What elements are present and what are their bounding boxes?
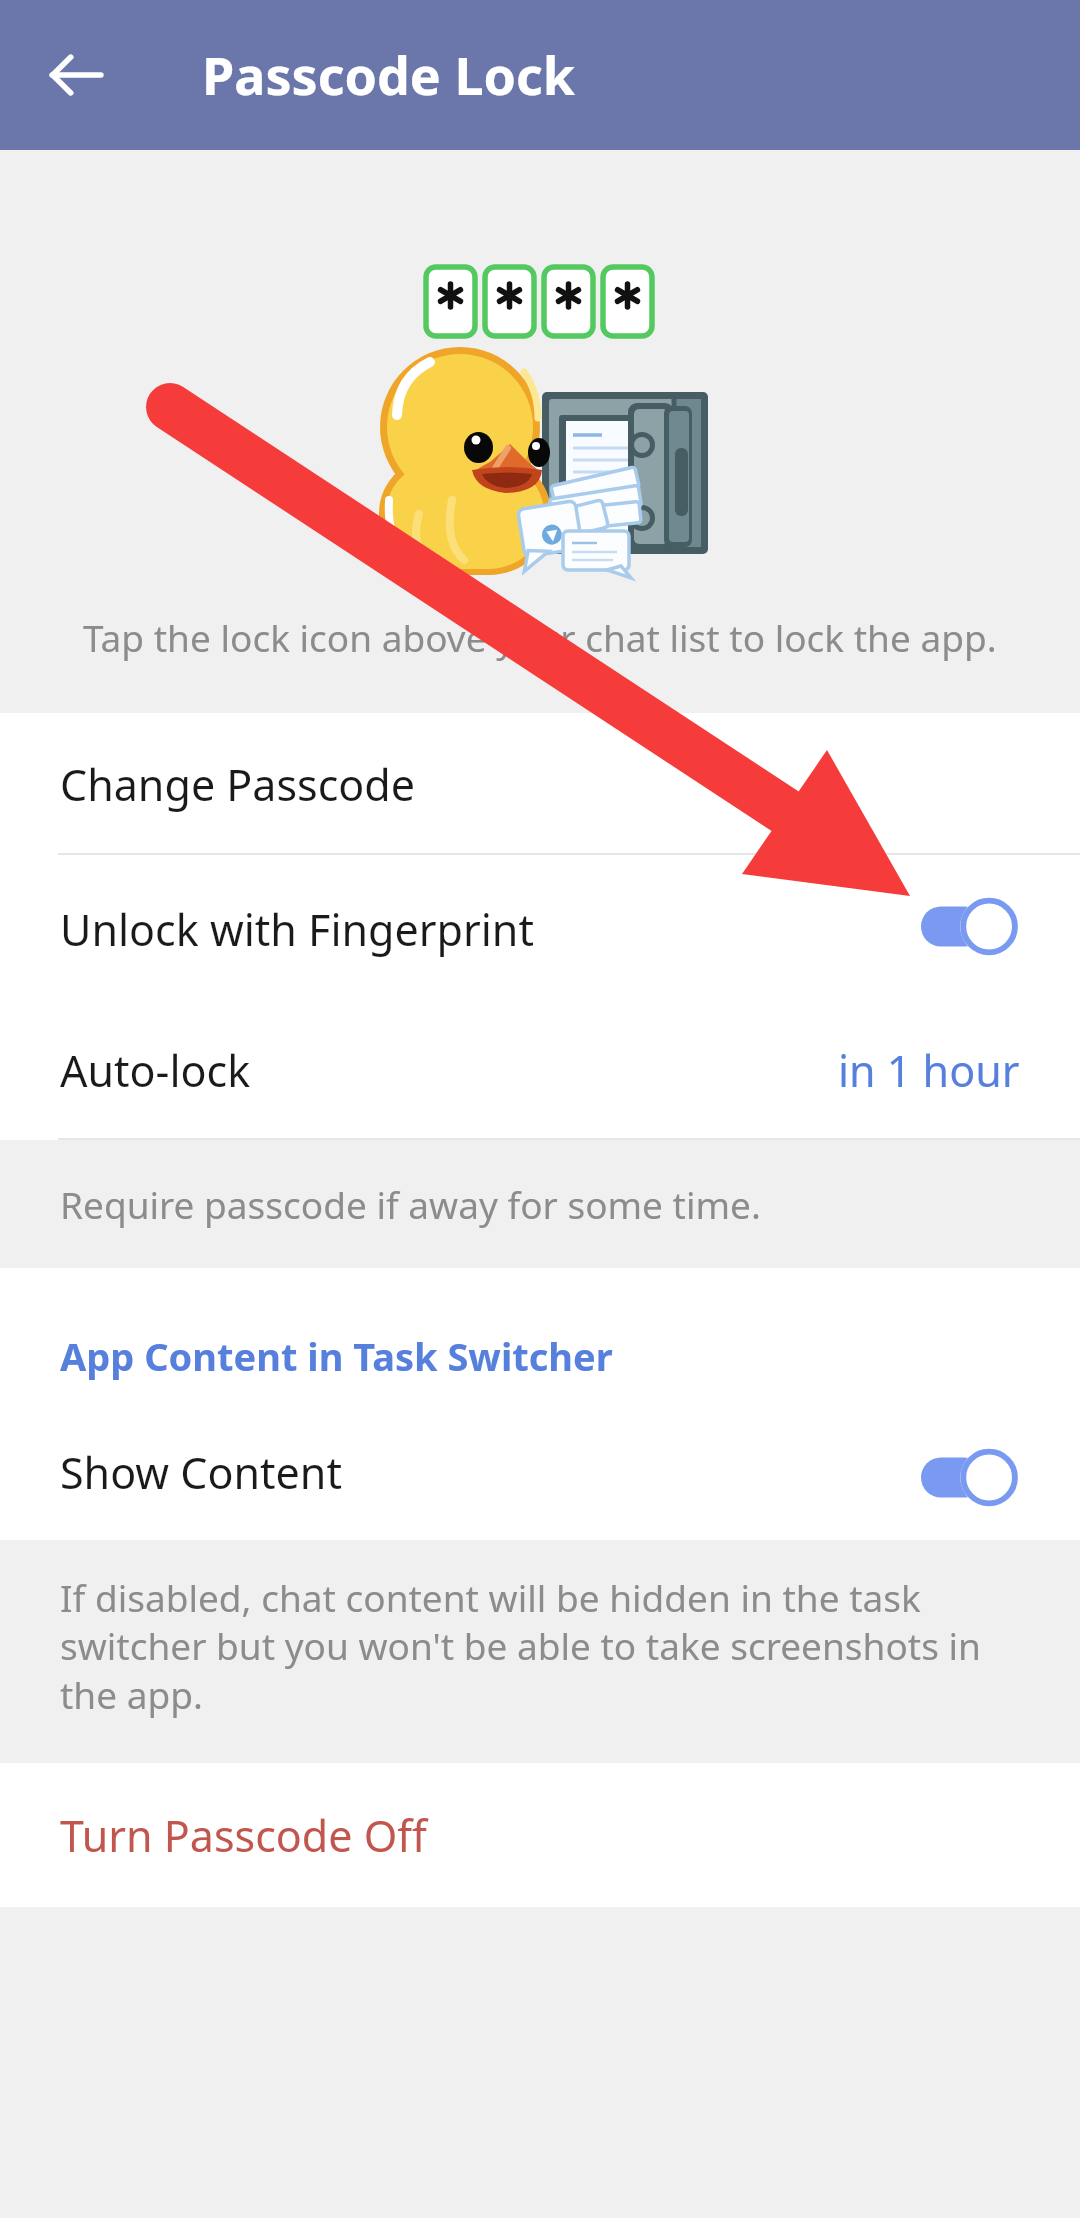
staticText: Auto-lock xyxy=(60,1041,251,1100)
staticText: Require passcode if away for some time. xyxy=(60,1179,761,1229)
button[interactable]: Unlock with Fingerprint xyxy=(0,855,1080,997)
button[interactable]: Unlock with Fingerprint, on xyxy=(921,897,1018,956)
staticText: Passcode Lock xyxy=(202,39,576,110)
staticText: Unlock with Fingerprint xyxy=(60,900,534,959)
staticText: Turn Passcode Off xyxy=(60,1806,427,1865)
button[interactable]: Show Content xyxy=(0,1414,1080,1540)
staticText: If disabled, chat content will be hidden… xyxy=(60,1572,1005,1720)
button[interactable]: Change Passcode xyxy=(0,713,1080,853)
staticText: Change Passcode xyxy=(60,755,416,814)
staticText: Show Content xyxy=(60,1443,342,1502)
button[interactable]: Show Content, on xyxy=(921,1448,1018,1507)
staticText: Tap the lock icon above your chat list t… xyxy=(83,612,997,662)
button[interactable]: Turn Passcode Off xyxy=(0,1763,1080,1907)
staticText: in 1 hour xyxy=(838,1041,1020,1100)
button[interactable]: Auto-lock xyxy=(0,997,1080,1138)
button[interactable]: Back xyxy=(32,31,120,119)
staticText: App Content in Task Switcher xyxy=(60,1330,613,1382)
